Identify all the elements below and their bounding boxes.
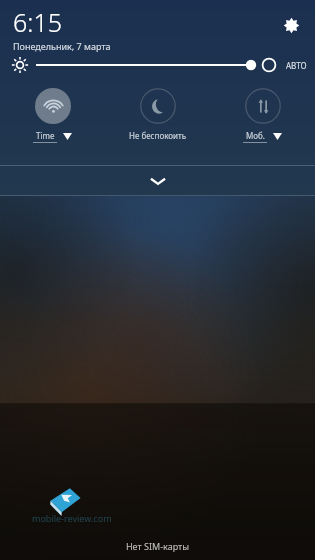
button[interactable]: Моб.: [210, 86, 315, 150]
staticText: mobile-review.com: [32, 512, 112, 524]
staticText: Понедельник, 7 марта: [13, 40, 111, 52]
staticText: Не беспокоить: [129, 130, 187, 141]
staticText: АВТО: [286, 60, 307, 71]
button[interactable]: Expand quick settings: [0, 165, 315, 196]
staticText: Нет SIM-карты: [0, 540, 315, 552]
staticText: Time: [36, 130, 55, 141]
button[interactable]: Time: [0, 86, 105, 150]
button[interactable]: Settings: [276, 10, 306, 40]
staticText: 6:15: [13, 5, 62, 39]
staticText: Моб.: [246, 130, 265, 141]
button[interactable]: Не беспокоить: [105, 86, 210, 150]
button[interactable]: АВТО: [0, 50, 315, 80]
